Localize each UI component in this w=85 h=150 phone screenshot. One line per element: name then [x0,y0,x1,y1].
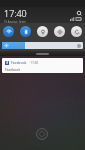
button[interactable]: Wi-Fi [3,26,14,37]
button[interactable]: Sound [54,26,65,37]
staticText: Facebook [11,60,27,65]
button[interactable]: Settings [76,10,82,16]
staticText: · 17:40 [29,61,39,65]
button[interactable]: Home [36,128,48,140]
staticText: 16 Agustus, Senin [4,20,26,23]
button[interactable]: 17:40 [4,7,27,23]
button[interactable]: Flashlight [37,26,48,37]
button[interactable] [0,51,85,56]
staticText: f [6,61,8,65]
button[interactable]: f [2,58,83,73]
button[interactable] [2,42,83,49]
button[interactable]: Auto rotate [71,26,82,37]
staticText: 17:40 [4,7,27,19]
button[interactable]: Bluetooth [20,26,31,37]
staticText: Facebook [5,67,21,71]
